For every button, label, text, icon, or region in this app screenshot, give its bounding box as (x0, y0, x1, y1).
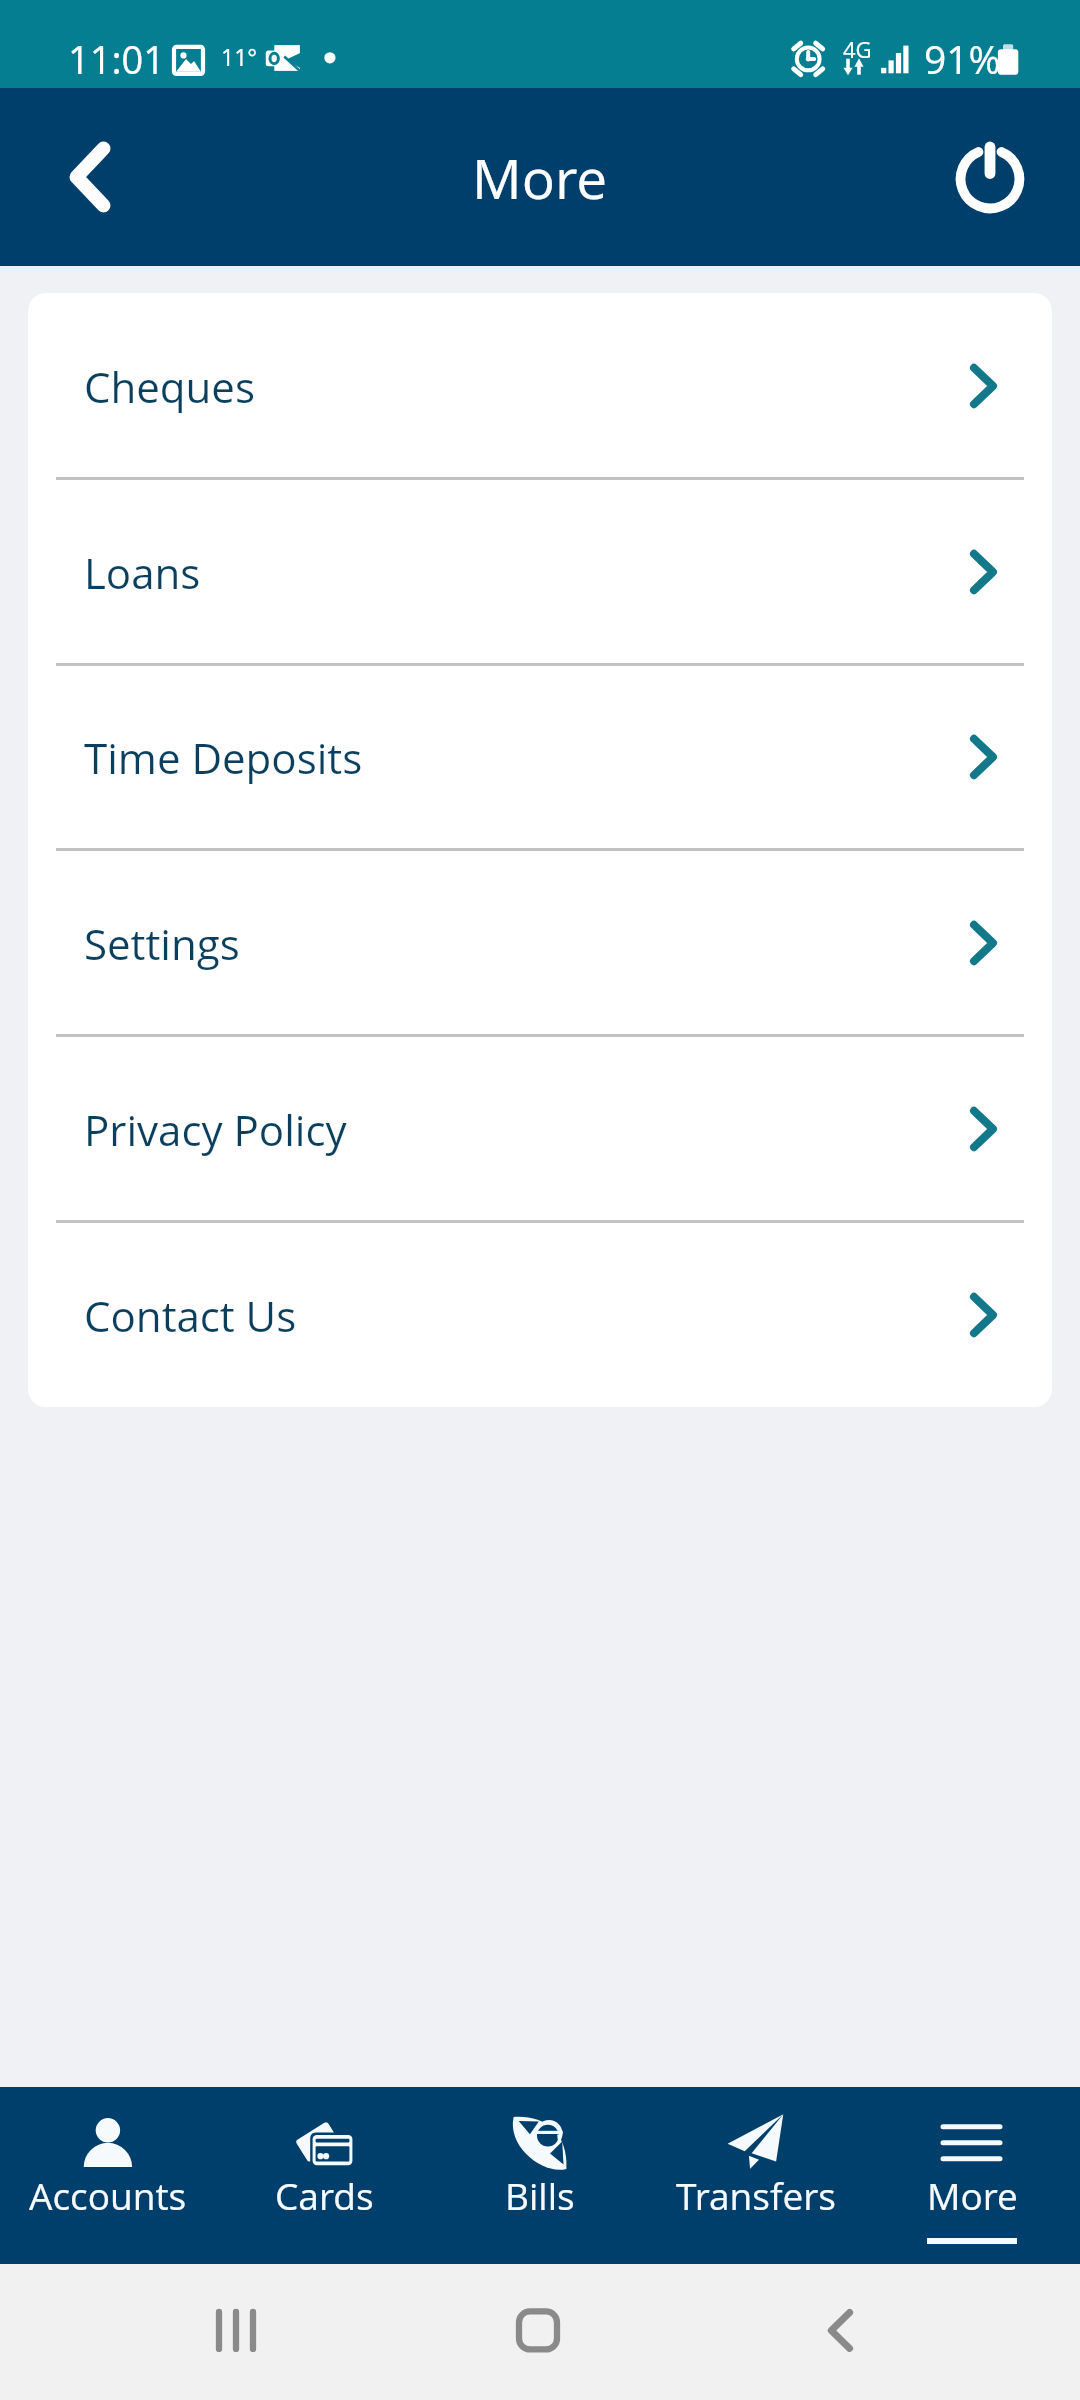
button[interactable]: Back (800, 2290, 880, 2370)
button[interactable]: Cheques (28, 293, 1052, 479)
staticText: Time Deposits (84, 729, 363, 786)
button[interactable]: Back (44, 131, 136, 223)
staticText: 91% (924, 32, 1001, 85)
staticText: Transfers (676, 2170, 836, 2220)
staticText: Cards (275, 2170, 374, 2220)
staticText: Loans (84, 544, 201, 601)
staticText: 11° (221, 41, 258, 72)
button[interactable]: Accounts (0, 2087, 216, 2264)
button[interactable]: Home (498, 2290, 578, 2370)
button[interactable]: Contact Us (28, 1222, 1052, 1407)
staticText: 11:01 (68, 33, 166, 85)
button[interactable]: Log out (944, 131, 1036, 223)
staticText: Settings (84, 915, 240, 972)
button[interactable]: More (864, 2087, 1080, 2264)
staticText: Bills (505, 2170, 575, 2220)
button[interactable]: Bills (432, 2087, 648, 2264)
staticText: 4G (843, 34, 872, 64)
button[interactable]: Transfers (648, 2087, 864, 2264)
staticText: More (472, 140, 608, 215)
button[interactable]: Cards (216, 2087, 432, 2264)
button[interactable]: Settings (28, 850, 1052, 1036)
button[interactable]: Loans (28, 479, 1052, 665)
staticText: Privacy Policy (84, 1101, 347, 1158)
button[interactable]: Recent apps (196, 2290, 276, 2370)
staticText: Accounts (29, 2170, 187, 2220)
button[interactable]: Privacy Policy (28, 1036, 1052, 1222)
button[interactable]: Time Deposits (28, 664, 1052, 850)
staticText: More (927, 2170, 1018, 2220)
staticText: Contact Us (84, 1287, 297, 1344)
staticText: Cheques (84, 358, 255, 415)
